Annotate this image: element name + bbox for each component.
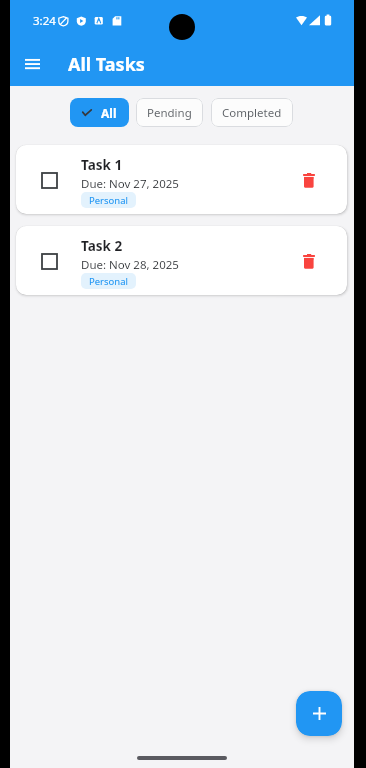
button[interactable]: Pending (136, 98, 203, 127)
staticText: 3:24 (33, 13, 56, 29)
staticText: Due: Nov 27, 2025 (81, 176, 179, 192)
button[interactable]: All (70, 98, 129, 127)
staticText: Task 2 (81, 237, 123, 255)
staticText: Personal (89, 194, 128, 207)
staticText: Personal (89, 275, 128, 288)
button[interactable]: Delete task (296, 167, 322, 193)
button[interactable]: Toggle task (37, 249, 61, 273)
button[interactable]: Delete task (296, 248, 322, 274)
staticText: Due: Nov 28, 2025 (81, 257, 179, 273)
staticText: Pending (147, 105, 192, 121)
staticText: Completed (222, 105, 282, 121)
staticText: All (101, 105, 117, 121)
button[interactable]: Completed (211, 98, 293, 127)
button[interactable]: Toggle task (16, 145, 347, 214)
button[interactable]: Toggle task (16, 226, 347, 295)
button[interactable]: Add task (296, 691, 342, 736)
button[interactable]: Menu (12, 44, 52, 84)
staticText: All Tasks (68, 52, 145, 77)
staticText: Task 1 (81, 156, 123, 174)
button[interactable]: Toggle task (37, 168, 61, 192)
